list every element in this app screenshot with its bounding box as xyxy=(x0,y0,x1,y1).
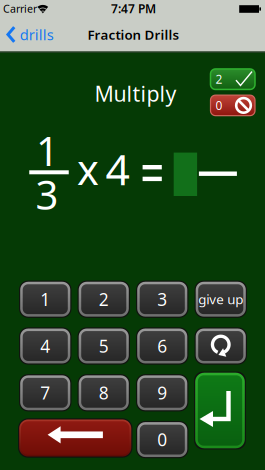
staticText: 4 xyxy=(40,334,50,357)
button[interactable]: 9 xyxy=(136,374,188,411)
staticText: Fraction Drills xyxy=(87,26,179,43)
staticText: 0 xyxy=(215,97,222,113)
staticText: 6 xyxy=(157,334,167,357)
staticText: 5 xyxy=(99,334,109,357)
button[interactable]: 5 xyxy=(77,327,130,365)
staticText: Multiply xyxy=(94,79,176,108)
button[interactable]: Enter xyxy=(194,371,246,449)
staticText: 7:47 PM xyxy=(111,0,156,16)
button[interactable]: 4 xyxy=(19,327,71,365)
button[interactable]: drills xyxy=(6,19,54,49)
staticText: 1 xyxy=(36,124,59,177)
staticText: 4 xyxy=(105,140,129,197)
button[interactable]: Backspace xyxy=(18,418,132,458)
button[interactable]: 8 xyxy=(77,374,130,411)
staticText: 3 xyxy=(157,288,167,311)
button[interactable]: 1 xyxy=(19,281,71,318)
staticText: Carrier xyxy=(3,1,37,16)
button[interactable]: 3 xyxy=(136,281,188,318)
button[interactable]: 2 xyxy=(77,281,130,318)
staticText: 3 xyxy=(35,168,58,221)
staticText: 1 xyxy=(40,288,50,311)
staticText: 0 xyxy=(157,428,167,451)
staticText: 7 xyxy=(40,381,50,404)
button[interactable]: Retry xyxy=(194,327,247,365)
staticText: drills xyxy=(20,25,54,44)
staticText: 2 xyxy=(99,288,109,311)
staticText: 9 xyxy=(157,381,167,404)
staticText: give up xyxy=(198,290,243,308)
staticText: 2 xyxy=(215,71,222,87)
button[interactable]: 6 xyxy=(136,327,188,365)
button[interactable]: 7 xyxy=(19,374,71,411)
button[interactable]: 0 xyxy=(136,421,188,458)
staticText: 8 xyxy=(99,381,109,404)
staticText: x xyxy=(77,142,99,196)
button[interactable]: give up xyxy=(194,281,247,318)
